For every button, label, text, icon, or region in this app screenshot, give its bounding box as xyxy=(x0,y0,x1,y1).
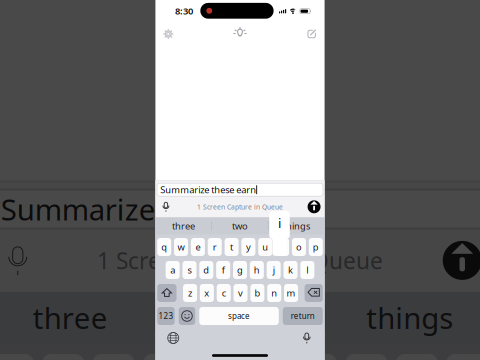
staticText: m xyxy=(287,287,296,299)
staticText: Summarize these earn xyxy=(1,190,312,229)
staticText: c xyxy=(222,287,226,299)
button[interactable]: n xyxy=(267,284,281,302)
staticText: f xyxy=(222,264,225,276)
staticText: three xyxy=(33,298,108,337)
staticText: z xyxy=(188,287,192,299)
button[interactable]: Summarize these earn xyxy=(0,182,480,229)
staticText: j xyxy=(273,264,275,276)
button[interactable] xyxy=(275,238,289,256)
button[interactable]: p xyxy=(446,354,480,360)
staticText: two xyxy=(232,220,248,232)
staticText: three xyxy=(172,220,195,232)
button[interactable]: u xyxy=(295,354,337,360)
staticText: return xyxy=(291,311,315,321)
button[interactable]: o xyxy=(292,238,306,256)
staticText: u xyxy=(262,241,268,253)
staticText: n xyxy=(271,287,277,299)
staticText: l xyxy=(306,264,308,276)
button[interactable] xyxy=(179,307,195,325)
button[interactable]: Dictate xyxy=(0,233,43,287)
button[interactable]: s xyxy=(182,261,196,279)
button[interactable]: space xyxy=(199,307,279,325)
button[interactable]: e xyxy=(191,238,205,256)
staticText: e xyxy=(195,241,200,253)
button[interactable]: things xyxy=(326,292,480,343)
staticText: v xyxy=(238,287,243,299)
staticText: 1 Screen Capture in Queue xyxy=(97,245,383,275)
button[interactable]: o xyxy=(396,354,438,360)
button[interactable]: New chat xyxy=(299,22,325,46)
button[interactable]: v xyxy=(234,284,248,302)
staticText: t xyxy=(230,241,233,253)
button[interactable]: m xyxy=(284,284,298,302)
button[interactable]: t xyxy=(225,238,239,256)
staticText: 8:30 xyxy=(175,5,193,17)
button[interactable]: three xyxy=(0,292,154,343)
button[interactable] xyxy=(305,284,323,302)
staticText: g xyxy=(237,264,243,276)
button[interactable]: r xyxy=(208,238,222,256)
button[interactable]: d xyxy=(199,261,213,279)
button[interactable]: Dictate xyxy=(157,198,174,216)
button[interactable]: two xyxy=(156,292,324,343)
button[interactable]: l xyxy=(300,261,314,279)
button[interactable]: y xyxy=(241,238,255,256)
button[interactable]: c xyxy=(217,284,231,302)
button[interactable]: things xyxy=(269,217,325,234)
button[interactable]: Next keyboard xyxy=(162,330,184,346)
staticText: y xyxy=(246,241,251,253)
staticText: q xyxy=(161,241,167,253)
button[interactable]: q xyxy=(157,238,171,256)
staticText: r xyxy=(213,241,217,253)
staticText: h xyxy=(254,264,260,276)
button[interactable]: u xyxy=(258,238,272,256)
staticText: w xyxy=(178,241,185,253)
staticText: 1 Screen Capture in Queue xyxy=(197,202,283,211)
button[interactable]: w xyxy=(174,238,188,256)
staticText: k xyxy=(288,264,293,276)
button[interactable]: 123 xyxy=(157,307,175,325)
button[interactable]: Dictation xyxy=(296,330,318,346)
staticText: two xyxy=(214,298,266,337)
button[interactable]: Send xyxy=(437,233,480,287)
staticText: s xyxy=(187,264,191,276)
button[interactable]: three xyxy=(155,217,211,234)
staticText: x xyxy=(204,287,209,299)
button[interactable] xyxy=(157,284,176,302)
staticText: b xyxy=(254,287,260,299)
button[interactable]: f xyxy=(216,261,230,279)
button[interactable]: h xyxy=(250,261,264,279)
button[interactable]: Suggestions xyxy=(227,22,253,46)
button[interactable]: q xyxy=(0,354,34,360)
button[interactable]: y xyxy=(244,354,286,360)
button[interactable]: Settings xyxy=(155,22,181,46)
staticText: Summarize these earn xyxy=(160,183,256,196)
button[interactable]: Summarize these earn xyxy=(155,181,325,196)
button[interactable] xyxy=(345,354,387,360)
button[interactable]: t xyxy=(194,354,236,360)
staticText: space xyxy=(228,311,250,321)
button[interactable]: e xyxy=(93,354,135,360)
staticText: d xyxy=(203,264,209,276)
staticText: things xyxy=(366,298,453,337)
staticText: p xyxy=(313,241,319,253)
staticText: things xyxy=(283,220,310,232)
button[interactable]: b xyxy=(250,284,264,302)
button[interactable]: Send xyxy=(306,198,323,216)
button[interactable]: x xyxy=(200,284,214,302)
button[interactable]: r xyxy=(143,354,185,360)
button[interactable]: p xyxy=(309,238,323,256)
button[interactable]: return xyxy=(283,307,323,325)
button[interactable]: z xyxy=(183,284,197,302)
staticText: i xyxy=(278,214,281,232)
staticText: a xyxy=(170,264,175,276)
button[interactable]: w xyxy=(42,354,84,360)
staticText: o xyxy=(296,241,302,253)
button[interactable]: a xyxy=(166,261,180,279)
button[interactable]: k xyxy=(283,261,297,279)
button[interactable]: two xyxy=(212,217,268,234)
staticText: 123 xyxy=(158,311,173,321)
button[interactable]: g xyxy=(233,261,247,279)
button[interactable]: j xyxy=(267,261,281,279)
